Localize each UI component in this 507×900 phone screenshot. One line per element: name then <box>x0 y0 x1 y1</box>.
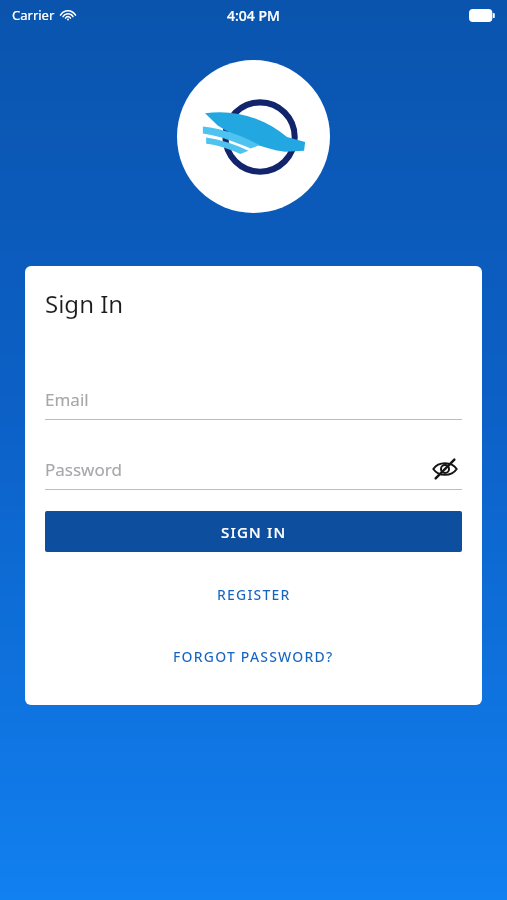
staticText: Sign In <box>45 287 124 320</box>
button[interactable]: REGISTER <box>45 576 462 612</box>
button[interactable]: SIGN IN <box>45 511 462 552</box>
staticText: REGISTER <box>217 585 291 604</box>
staticText: Email <box>45 388 89 411</box>
button[interactable]: FORGOT PASSWORD? <box>45 638 462 674</box>
staticText: 4:04 PM <box>227 6 280 25</box>
staticText: Password <box>45 458 122 481</box>
staticText: Carrier <box>12 6 55 24</box>
staticText: FORGOT PASSWORD? <box>173 647 334 666</box>
staticText: SIGN IN <box>221 522 287 542</box>
button[interactable]: Toggle password visibility <box>428 455 462 483</box>
